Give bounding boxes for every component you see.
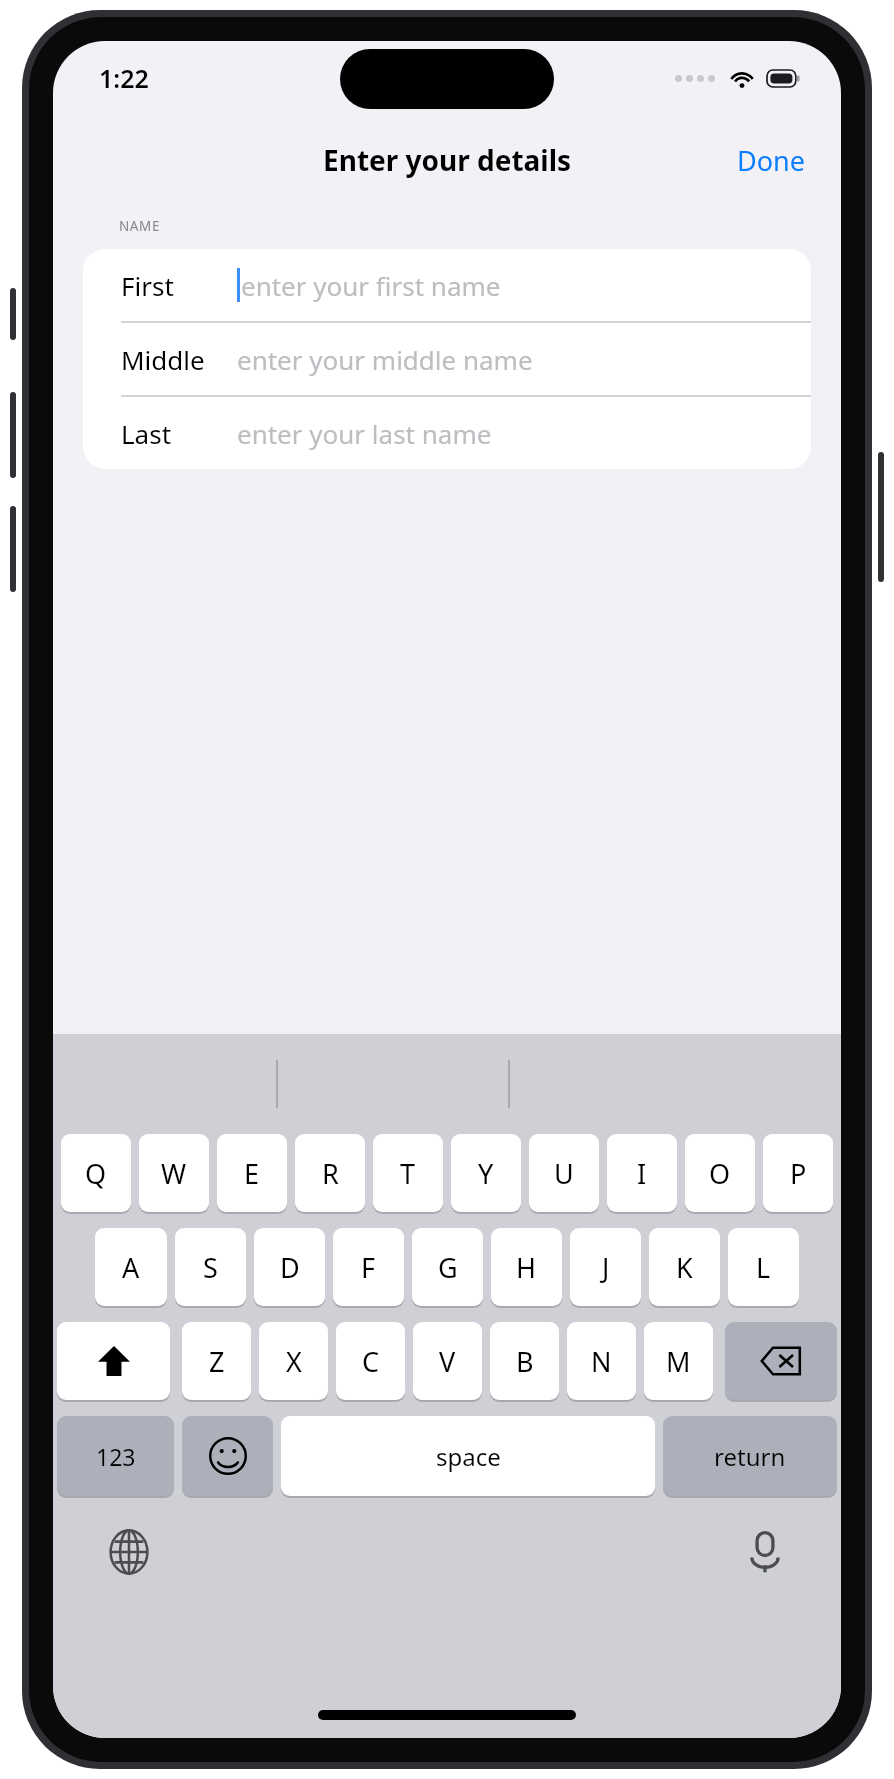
staticText: Middle: [121, 342, 205, 377]
staticText: 123: [96, 1441, 136, 1472]
button[interactable]: G: [412, 1228, 483, 1306]
button[interactable]: Last: [83, 397, 811, 469]
staticText: enter your last name: [237, 416, 492, 451]
button[interactable]: L: [728, 1228, 799, 1306]
staticText: K: [676, 1249, 693, 1286]
staticText: H: [516, 1249, 537, 1286]
button[interactable]: X: [259, 1322, 328, 1400]
button[interactable]: J: [570, 1228, 641, 1306]
staticText: V: [439, 1343, 456, 1380]
button[interactable]: E: [217, 1134, 287, 1212]
button[interactable]: A: [95, 1228, 167, 1306]
button[interactable]: W: [139, 1134, 209, 1212]
button[interactable]: Emoji: [182, 1416, 273, 1496]
button[interactable]: Dictate: [733, 1520, 797, 1584]
staticText: Z: [209, 1343, 225, 1380]
staticText: T: [400, 1155, 416, 1192]
button[interactable]: T: [373, 1134, 443, 1212]
staticText: B: [516, 1343, 534, 1380]
staticText: S: [203, 1249, 218, 1286]
button[interactable]: O: [685, 1134, 755, 1212]
button[interactable]: M: [644, 1322, 713, 1400]
staticText: U: [554, 1155, 574, 1192]
staticText: G: [438, 1249, 458, 1286]
staticText: space: [436, 1440, 501, 1473]
button[interactable]: Change keyboard language: [97, 1520, 161, 1584]
staticText: enter your first name: [241, 268, 501, 303]
staticText: M: [666, 1343, 691, 1380]
button[interactable]: space: [281, 1416, 655, 1496]
button[interactable]: F: [333, 1228, 404, 1306]
button[interactable]: H: [491, 1228, 562, 1306]
button[interactable]: C: [336, 1322, 405, 1400]
staticText: Last: [121, 416, 172, 451]
staticText: Y: [478, 1155, 494, 1192]
staticText: First: [121, 268, 174, 303]
staticText: A: [122, 1249, 140, 1286]
button[interactable]: V: [413, 1322, 482, 1400]
staticText: C: [362, 1343, 380, 1380]
staticText: E: [244, 1155, 260, 1192]
button[interactable]: 123: [57, 1416, 174, 1496]
staticText: Enter your details: [323, 141, 572, 179]
button[interactable]: D: [254, 1228, 325, 1306]
staticText: return: [714, 1440, 786, 1473]
button[interactable]: First: [83, 249, 811, 321]
staticText: Q: [85, 1155, 107, 1192]
button[interactable]: Done: [731, 138, 811, 183]
staticText: O: [709, 1155, 731, 1192]
button[interactable]: Z: [182, 1322, 251, 1400]
staticText: NAME: [119, 217, 161, 235]
button[interactable]: U: [529, 1134, 599, 1212]
staticText: X: [286, 1343, 302, 1380]
staticText: Done: [737, 142, 805, 179]
staticText: F: [361, 1249, 376, 1286]
button[interactable]: S: [175, 1228, 246, 1306]
button[interactable]: return: [663, 1416, 837, 1496]
staticText: R: [322, 1155, 339, 1192]
button[interactable]: R: [295, 1134, 365, 1212]
button[interactable]: I: [607, 1134, 677, 1212]
button[interactable]: K: [649, 1228, 720, 1306]
button[interactable]: Q: [61, 1134, 131, 1212]
staticText: P: [790, 1155, 807, 1192]
button[interactable]: N: [567, 1322, 636, 1400]
staticText: L: [756, 1249, 771, 1286]
button[interactable]: B: [490, 1322, 559, 1400]
staticText: W: [161, 1155, 187, 1192]
staticText: 1:22: [99, 61, 149, 95]
button[interactable]: Shift: [57, 1322, 170, 1400]
staticText: enter your middle name: [237, 342, 533, 377]
button[interactable]: Y: [451, 1134, 521, 1212]
staticText: D: [280, 1249, 300, 1286]
button[interactable]: Middle: [83, 323, 811, 395]
staticText: N: [591, 1343, 612, 1380]
staticText: I: [637, 1155, 647, 1192]
button[interactable]: P: [763, 1134, 833, 1212]
staticText: J: [602, 1249, 610, 1286]
button[interactable]: Backspace: [725, 1322, 837, 1400]
